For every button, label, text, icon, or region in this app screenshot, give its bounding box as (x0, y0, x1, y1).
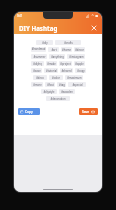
staticText: #shared (61, 69, 72, 73)
staticText: #save (33, 69, 41, 73)
staticText: #instagram (69, 55, 84, 59)
staticText: #more (33, 83, 42, 87)
staticText: #art (51, 48, 57, 52)
button[interactable]: #shared (60, 68, 73, 73)
staticText: Save (82, 110, 90, 114)
button[interactable]: #decoration (46, 96, 70, 101)
button[interactable]: #summer (31, 54, 47, 59)
staticText: 9:41 (17, 14, 23, 18)
button[interactable]: #deco (33, 75, 47, 80)
button[interactable]: Close (90, 24, 97, 31)
staticText: #special (72, 83, 83, 87)
staticText: #copy (77, 69, 85, 73)
staticText: #wooden (61, 90, 73, 94)
staticText: #home (62, 48, 71, 52)
button[interactable]: #tutorial (44, 68, 58, 73)
staticText: #color (52, 76, 60, 80)
button[interactable]: #wooden (59, 89, 75, 94)
button[interactable]: #instagram (67, 54, 85, 59)
staticText: #tag (59, 83, 65, 87)
button[interactable]: #make (46, 61, 57, 66)
staticText: #deco (36, 76, 44, 80)
button[interactable]: #copy (75, 68, 86, 73)
button[interactable]: #tag (57, 82, 66, 87)
button[interactable]: #project (59, 61, 72, 66)
staticText: #diy (42, 41, 48, 45)
button[interactable]: #handmade (31, 47, 46, 52)
button[interactable]: #more (31, 82, 43, 87)
button[interactable]: #anything (49, 54, 65, 59)
staticText: Copy (25, 110, 33, 114)
button[interactable]: #home (61, 47, 72, 52)
staticText: #maximum (67, 76, 82, 80)
staticText: #diyhq (33, 62, 42, 66)
button[interactable]: #color (49, 75, 63, 80)
button[interactable]: Copy (18, 108, 40, 115)
button[interactable]: #art (48, 47, 59, 52)
staticText: DIY Hashtag (19, 24, 58, 32)
staticText: #project (60, 62, 71, 66)
staticText: #handmade (31, 47, 46, 52)
staticText: #crafts (64, 41, 73, 45)
staticText: #tutorial (46, 69, 57, 73)
button[interactable]: #apple (74, 61, 85, 66)
button[interactable]: #decor (74, 47, 85, 52)
staticText: #anything (51, 55, 64, 59)
staticText: #make (47, 62, 56, 66)
staticText: #decor (75, 48, 84, 52)
staticText: #fast (47, 83, 54, 87)
button[interactable]: #diy (36, 40, 53, 45)
button[interactable]: Save (79, 108, 98, 115)
button[interactable]: #fast (45, 82, 55, 87)
staticText: #decoration (50, 97, 66, 101)
staticText: #diystyle (43, 90, 55, 94)
button[interactable]: #save (31, 68, 42, 73)
staticText: #apple (75, 62, 84, 66)
button[interactable]: #maximum (65, 75, 83, 80)
staticText: #summer (33, 55, 46, 59)
button[interactable]: #special (68, 82, 86, 87)
button[interactable]: #diystyle (41, 89, 57, 94)
button[interactable]: #crafts (55, 40, 81, 45)
button[interactable]: #diyhq (31, 61, 44, 66)
